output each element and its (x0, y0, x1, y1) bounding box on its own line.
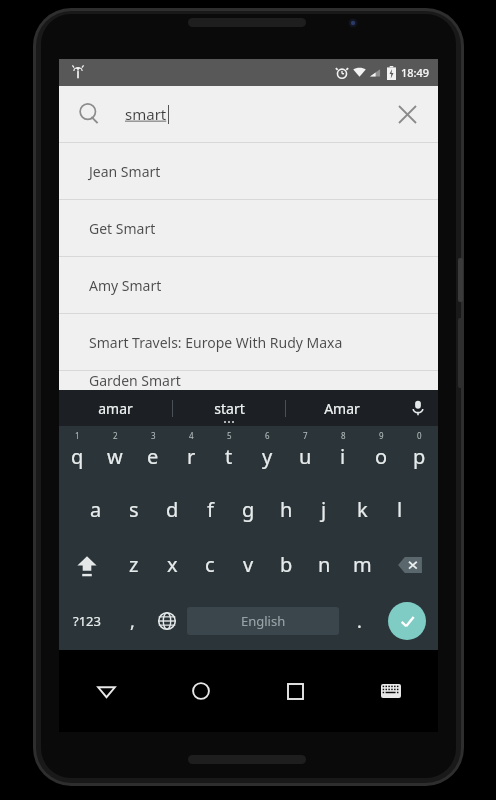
button[interactable]: Shift (59, 537, 115, 592)
staticText: k (357, 496, 368, 523)
staticText: 4 (189, 430, 194, 441)
staticText: t (225, 443, 233, 470)
button[interactable]: 6 (248, 426, 286, 482)
button[interactable]: Amy Smart (59, 257, 438, 313)
staticText: 3 (151, 430, 156, 441)
staticText: f (207, 496, 214, 523)
button[interactable]: Get Smart (59, 200, 438, 256)
staticText: l (397, 496, 403, 523)
button[interactable]: Change language (150, 592, 184, 650)
staticText: z (129, 551, 139, 578)
staticText: o (375, 443, 388, 470)
button[interactable]: English (187, 607, 339, 635)
button[interactable]: Back (59, 650, 153, 732)
button[interactable]: 1 (59, 426, 96, 482)
staticText: 7 (303, 430, 308, 441)
button[interactable]: start (173, 390, 285, 426)
staticText: Jean Smart (89, 162, 161, 181)
staticText: a (90, 496, 102, 523)
staticText: m (353, 551, 372, 578)
button[interactable]: x (153, 537, 191, 592)
staticText: p (413, 443, 426, 470)
staticText: c (205, 551, 215, 578)
staticText: w (107, 443, 123, 470)
button[interactable]: s (115, 482, 153, 537)
staticText: e (147, 443, 159, 470)
staticText: , (130, 609, 135, 634)
button[interactable]: 8 (324, 426, 362, 482)
button[interactable]: 7 (286, 426, 324, 482)
button[interactable]: Home (153, 650, 248, 732)
button[interactable]: 5 (210, 426, 248, 482)
staticText: Amar (324, 399, 360, 418)
button[interactable]: 9 (362, 426, 400, 482)
staticText: s (129, 496, 139, 523)
button[interactable]: Jean Smart (59, 143, 438, 199)
button[interactable]: 4 (172, 426, 210, 482)
staticText: n (318, 551, 331, 578)
button[interactable]: Voice input (398, 390, 438, 426)
staticText: d (166, 496, 179, 523)
staticText: . (357, 609, 362, 634)
button[interactable]: Enter (388, 602, 426, 640)
staticText: Get Smart (89, 219, 156, 238)
staticText: 9 (379, 430, 384, 441)
staticText: y (262, 443, 273, 470)
button[interactable]: Recent apps (248, 650, 343, 732)
button[interactable]: Amar (286, 390, 398, 426)
button[interactable]: k (343, 482, 381, 537)
button[interactable]: Search (59, 86, 438, 142)
button[interactable]: b (267, 537, 305, 592)
button[interactable]: 2 (96, 426, 134, 482)
button[interactable]: n (305, 537, 343, 592)
button[interactable]: f (191, 482, 229, 537)
button[interactable]: c (191, 537, 229, 592)
staticText: 6 (265, 430, 270, 441)
button[interactable]: Garden Smart (59, 371, 438, 390)
staticText: 18:49 (401, 65, 430, 80)
staticText: 0 (417, 430, 422, 441)
staticText: start (214, 399, 245, 418)
staticText: 1 (75, 430, 80, 441)
button[interactable]: l (381, 482, 419, 537)
staticText: q (71, 443, 84, 470)
button[interactable]: j (305, 482, 343, 537)
button[interactable]: Backspace (381, 537, 438, 592)
staticText: g (242, 496, 255, 523)
staticText: x (167, 551, 178, 578)
button[interactable]: 0 (400, 426, 438, 482)
staticText: 8 (341, 430, 346, 441)
button[interactable]: amar (59, 390, 172, 426)
button[interactable]: . (342, 592, 376, 650)
staticText: u (299, 443, 312, 470)
button[interactable]: d (153, 482, 191, 537)
button[interactable]: Smart Travels: Europe With Rudy Maxa (59, 314, 438, 370)
button[interactable]: 3 (134, 426, 172, 482)
staticText: English (241, 612, 286, 630)
staticText: smart (125, 104, 167, 124)
staticText: Smart Travels: Europe With Rudy Maxa (89, 333, 343, 352)
staticText: Garden Smart (89, 371, 181, 390)
button[interactable]: ?123 (59, 592, 115, 650)
staticText: b (280, 551, 293, 578)
button[interactable]: h (267, 482, 305, 537)
button[interactable]: z (115, 537, 153, 592)
staticText: r (187, 443, 196, 470)
staticText: v (243, 551, 254, 578)
button[interactable]: Clear search (384, 91, 430, 137)
other: Search (77, 102, 101, 126)
staticText: ?123 (73, 612, 101, 630)
button[interactable]: v (229, 537, 267, 592)
staticText: j (321, 496, 327, 523)
staticText: h (280, 496, 293, 523)
button[interactable]: m (343, 537, 381, 592)
button[interactable]: , (115, 592, 150, 650)
staticText: amar (98, 399, 133, 418)
button[interactable]: a (77, 482, 115, 537)
staticText: Amy Smart (89, 276, 162, 295)
button[interactable]: Hide keyboard (343, 650, 438, 732)
button[interactable]: g (229, 482, 267, 537)
staticText: i (340, 443, 346, 470)
staticText: 5 (227, 430, 232, 441)
staticText: 2 (113, 430, 118, 441)
